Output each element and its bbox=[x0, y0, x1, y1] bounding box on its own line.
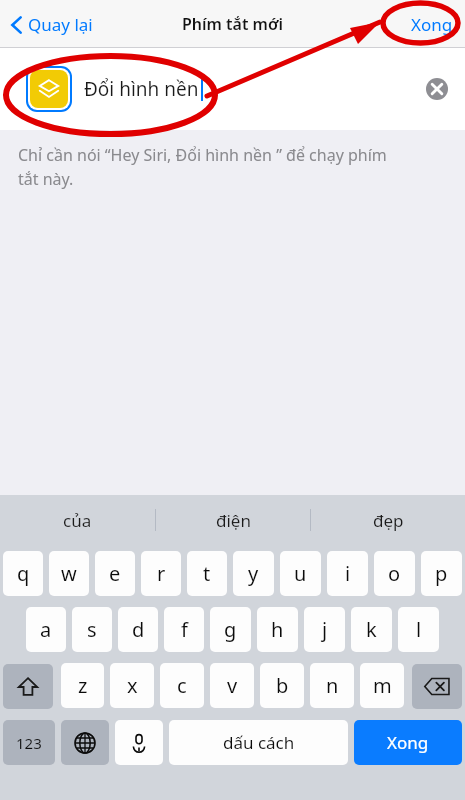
button[interactable]: b bbox=[260, 663, 304, 708]
staticText: a bbox=[40, 616, 52, 643]
button[interactable]: c bbox=[160, 663, 204, 708]
staticText: của bbox=[63, 509, 92, 532]
staticText: z bbox=[78, 672, 88, 699]
staticText: y bbox=[248, 560, 259, 587]
button[interactable]: dấu cách bbox=[169, 720, 348, 765]
staticText: Xong bbox=[387, 731, 429, 754]
button[interactable]: đẹp bbox=[311, 495, 465, 545]
button[interactable]: Xong bbox=[354, 720, 462, 765]
button[interactable]: m bbox=[360, 663, 404, 708]
button[interactable]: h bbox=[257, 607, 298, 652]
button[interactable]: v bbox=[210, 663, 254, 708]
staticText: j bbox=[322, 616, 328, 643]
button[interactable]: k bbox=[351, 607, 392, 652]
button[interactable]: w bbox=[49, 551, 89, 596]
button[interactable]: q bbox=[3, 551, 43, 596]
staticText: i bbox=[345, 560, 351, 587]
staticText: Quay lại bbox=[28, 13, 93, 36]
staticText: Xong bbox=[411, 13, 453, 36]
button[interactable]: i bbox=[327, 551, 368, 596]
button[interactable]: t bbox=[187, 551, 227, 596]
staticText: m bbox=[373, 672, 392, 699]
staticText: điện bbox=[216, 509, 251, 532]
button[interactable]: của bbox=[0, 495, 155, 545]
button[interactable]: r bbox=[141, 551, 181, 596]
button[interactable]: e bbox=[95, 551, 135, 596]
button[interactable]: 123 bbox=[3, 720, 55, 765]
button[interactable]: Đổi bàn phím bbox=[61, 720, 109, 765]
button[interactable]: f bbox=[164, 607, 204, 652]
staticText: Phím tắt mới bbox=[182, 13, 283, 35]
button[interactable]: j bbox=[304, 607, 345, 652]
staticText: Chỉ cần nói “Hey Siri, Đổi hình nền ” để… bbox=[18, 144, 387, 166]
button[interactable]: Quay lại bbox=[10, 13, 93, 36]
staticText: 123 bbox=[16, 733, 42, 753]
staticText: tắt này. bbox=[18, 168, 74, 190]
staticText: b bbox=[276, 672, 289, 699]
staticText: đẹp bbox=[373, 509, 404, 532]
staticText: l bbox=[416, 616, 422, 643]
staticText: v bbox=[227, 672, 238, 699]
staticText: h bbox=[271, 616, 284, 643]
button[interactable]: a bbox=[26, 607, 66, 652]
staticText: f bbox=[181, 616, 188, 643]
button[interactable]: điện bbox=[156, 495, 310, 545]
button[interactable]: Shift bbox=[3, 664, 53, 709]
staticText: p bbox=[435, 560, 448, 587]
staticText: g bbox=[224, 616, 237, 643]
button[interactable]: n bbox=[310, 663, 354, 708]
button[interactable]: s bbox=[72, 607, 112, 652]
staticText: s bbox=[87, 616, 97, 643]
button[interactable]: z bbox=[61, 663, 104, 708]
button[interactable]: Đọc chính tả bbox=[115, 720, 163, 765]
staticText: r bbox=[157, 560, 166, 587]
staticText: k bbox=[366, 616, 377, 643]
staticText: Đổi hình nền bbox=[84, 76, 199, 102]
button[interactable]: o bbox=[374, 551, 415, 596]
staticText: t bbox=[203, 560, 211, 587]
button[interactable]: Xong bbox=[411, 13, 453, 36]
staticText: x bbox=[127, 672, 138, 699]
staticText: w bbox=[61, 560, 77, 587]
staticText: q bbox=[17, 560, 30, 587]
button[interactable]: x bbox=[110, 663, 154, 708]
button[interactable]: Xoá bbox=[425, 77, 449, 101]
button[interactable]: Xoá lùi bbox=[412, 664, 462, 709]
staticText: u bbox=[294, 560, 307, 587]
staticText: c bbox=[177, 672, 187, 699]
staticText: e bbox=[109, 560, 121, 587]
button[interactable]: l bbox=[398, 607, 439, 652]
staticText: o bbox=[388, 560, 401, 587]
staticText: d bbox=[132, 616, 145, 643]
button[interactable]: d bbox=[118, 607, 158, 652]
button[interactable]: g bbox=[210, 607, 251, 652]
staticText: n bbox=[326, 672, 339, 699]
button[interactable] bbox=[30, 70, 68, 108]
button[interactable]: p bbox=[421, 551, 462, 596]
staticText: dấu cách bbox=[223, 731, 295, 754]
button[interactable]: u bbox=[280, 551, 321, 596]
button[interactable]: y bbox=[233, 551, 274, 596]
